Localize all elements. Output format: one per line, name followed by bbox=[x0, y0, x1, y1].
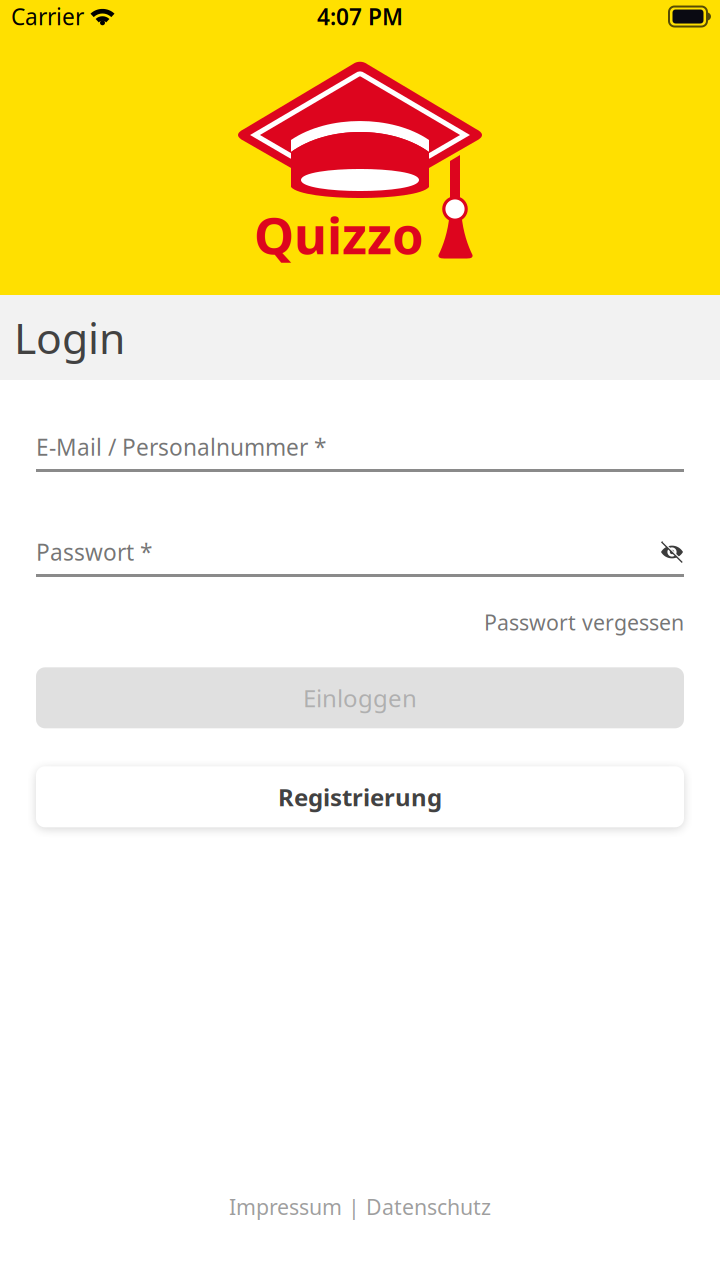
staticText: 4:07 PM bbox=[317, 1, 403, 31]
button[interactable]: Einloggen bbox=[36, 667, 684, 728]
staticText: Registrierung bbox=[278, 781, 442, 813]
staticText: Carrier bbox=[11, 1, 84, 31]
staticText: E-Mail / Personalnummer * bbox=[36, 432, 326, 462]
button[interactable]: Impressum | Datenschutz bbox=[229, 1193, 491, 1221]
staticText: Quizzo bbox=[254, 201, 424, 268]
button[interactable]: Passwort vergessen bbox=[484, 608, 684, 636]
staticText: Passwort * bbox=[36, 537, 152, 567]
button[interactable]: Registrierung bbox=[36, 766, 684, 827]
staticText: Einloggen bbox=[303, 682, 417, 714]
staticText: Login bbox=[14, 309, 125, 366]
staticText: Passwort vergessen bbox=[484, 608, 684, 636]
staticText: Impressum | Datenschutz bbox=[229, 1193, 491, 1221]
